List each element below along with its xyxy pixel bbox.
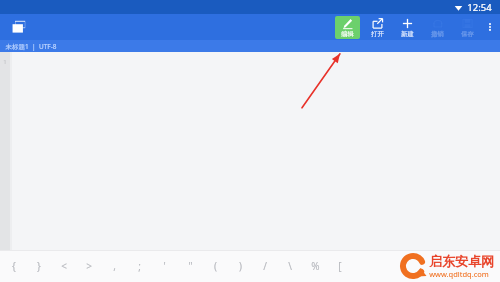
- staticText: 新建: [401, 30, 414, 38]
- staticText: ': [163, 259, 166, 273]
- button[interactable]: }: [29, 252, 49, 280]
- staticText: ,: [113, 259, 116, 273]
- button[interactable]: /: [255, 252, 275, 280]
- button[interactable]: ): [230, 252, 250, 280]
- staticText: (: [214, 259, 217, 273]
- button[interactable]: ": [180, 252, 200, 280]
- button[interactable]: 新建: [392, 14, 422, 40]
- button[interactable]: \: [280, 252, 300, 280]
- button[interactable]: 打开: [362, 14, 392, 40]
- button[interactable]: %: [305, 252, 325, 280]
- staticText: \: [288, 259, 292, 273]
- staticText: 撤销: [431, 30, 444, 38]
- staticText: <: [61, 259, 67, 273]
- button[interactable]: ': [154, 252, 174, 280]
- staticText: 打开: [371, 30, 384, 38]
- staticText: ): [239, 259, 242, 273]
- staticText: }: [37, 259, 41, 273]
- button[interactable]: 撤销: [422, 14, 452, 40]
- button[interactable]: <: [54, 252, 74, 280]
- staticText: %: [311, 259, 320, 273]
- staticText: 12:54: [467, 1, 492, 14]
- staticText: 编辑: [341, 30, 354, 38]
- staticText: /: [263, 259, 267, 273]
- button[interactable]: {: [4, 252, 24, 280]
- button[interactable]: Tabs: [8, 16, 30, 38]
- staticText: {: [12, 259, 16, 273]
- button[interactable]: (: [205, 252, 225, 280]
- button[interactable]: ,: [104, 252, 124, 280]
- button[interactable]: [: [330, 252, 350, 280]
- staticText: 启东安卓网: [429, 253, 494, 269]
- staticText: >: [86, 259, 92, 273]
- staticText: 保存: [461, 30, 474, 38]
- button[interactable]: More options: [482, 14, 498, 40]
- staticText: 1: [3, 58, 7, 66]
- staticText: ": [188, 259, 193, 273]
- staticText: 未标题1 | UTF-8: [5, 42, 57, 51]
- button[interactable]: 编辑: [332, 14, 362, 40]
- button[interactable]: ;: [129, 252, 149, 280]
- button[interactable]: >: [79, 252, 99, 280]
- staticText: www.qdltdq.com: [429, 269, 489, 279]
- staticText: ;: [138, 259, 141, 273]
- staticText: [: [338, 259, 342, 273]
- button[interactable]: 保存: [452, 14, 482, 40]
